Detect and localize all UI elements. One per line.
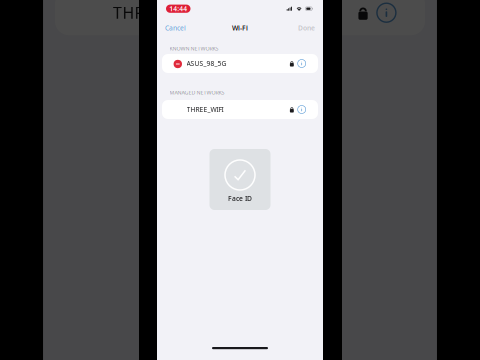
staticText: KNOWN NETWORKS — [169, 45, 218, 52]
staticText: 14:44 — [169, 4, 187, 13]
staticText: Done — [298, 24, 315, 32]
staticText: THREE_WIFI — [186, 105, 223, 114]
staticText: KNOWN NETWORKS — [169, 45, 218, 52]
staticText: Wi-Fi — [232, 24, 248, 32]
button[interactable]: Cancel — [164, 22, 187, 34]
staticText: 14:44 — [169, 4, 187, 13]
button[interactable]: ASUS_98_5G — [162, 54, 318, 73]
button[interactable]: Done — [297, 22, 316, 34]
button[interactable]: THREE_WIFI — [162, 100, 318, 119]
staticText: Done — [298, 24, 315, 32]
staticText: Face ID — [228, 194, 252, 203]
button[interactable]: Done — [297, 22, 316, 34]
staticText: Wi-Fi — [232, 24, 248, 32]
staticText: MANAGED NETWORKS — [169, 89, 224, 96]
staticText: Cancel — [165, 24, 186, 32]
staticText: Cancel — [165, 24, 186, 32]
button[interactable]: ASUS_98_5G — [162, 54, 318, 73]
staticText: ASUS_98_5G — [186, 59, 226, 68]
staticText: THREE_WIFI — [186, 105, 223, 114]
button[interactable]: Cancel — [164, 22, 187, 34]
staticText: MANAGED NETWORKS — [169, 89, 224, 96]
staticText: Face ID — [228, 194, 252, 203]
staticText: ASUS_98_5G — [186, 59, 226, 68]
button[interactable]: THREE_WIFI — [162, 100, 318, 119]
